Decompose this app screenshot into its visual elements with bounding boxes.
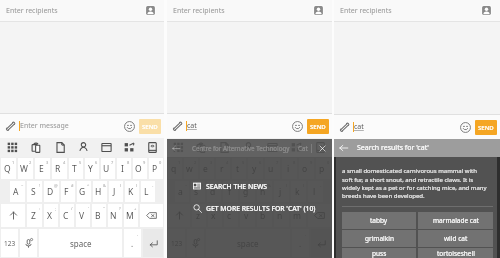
button[interactable]: F [61, 181, 75, 202]
button[interactable]: G [77, 181, 91, 202]
button[interactable]: Enter [143, 229, 163, 257]
button[interactable]: Emoji [289, 118, 305, 134]
button[interactable]: Shift [1, 204, 25, 227]
button[interactable]: D [44, 181, 59, 202]
button[interactable]: translate [118, 138, 141, 157]
button[interactable]: M [124, 204, 138, 227]
button[interactable]: P [149, 158, 163, 179]
button[interactable]: . [124, 229, 141, 257]
button[interactable]: H [93, 181, 107, 202]
button[interactable]: Contacts [481, 5, 492, 16]
button[interactable]: book [308, 138, 332, 157]
button[interactable]: person [236, 138, 260, 157]
button[interactable]: book [141, 138, 164, 157]
button[interactable]: W [18, 158, 33, 179]
button[interactable]: clip [24, 138, 48, 157]
button[interactable]: Close [318, 144, 327, 153]
button[interactable]: A [10, 181, 25, 202]
button[interactable]: SEARCH THE NEWS [193, 178, 332, 194]
button[interactable]: window [260, 138, 284, 157]
button[interactable]: Attach [4, 120, 16, 132]
button[interactable]: f [223, 181, 238, 202]
button[interactable]: translate [284, 138, 308, 157]
button[interactable]: b [257, 204, 272, 227]
button[interactable]: N [108, 204, 122, 227]
button[interactable]: clip [190, 138, 213, 157]
button[interactable]: grid [0, 138, 24, 157]
button[interactable]: m [291, 204, 306, 227]
button[interactable]: Back [172, 144, 181, 153]
button[interactable]: I [117, 158, 131, 179]
button[interactable]: d [207, 181, 221, 202]
button[interactable]: Attach [171, 120, 183, 132]
button[interactable]: Enter recipients [167, 0, 332, 21]
button[interactable]: doc [213, 138, 236, 157]
button[interactable]: v [240, 204, 255, 227]
button[interactable]: tabby [342, 212, 416, 229]
button[interactable]: z [192, 204, 206, 227]
button[interactable]: S [27, 181, 42, 202]
button[interactable]: C [60, 204, 74, 227]
button[interactable]: x [208, 204, 222, 227]
button[interactable]: Emoji [121, 118, 137, 134]
button[interactable]: GET MORE RESULTS FOR 'CAT' (10) [193, 200, 332, 216]
button[interactable]: SEND [475, 120, 497, 135]
button[interactable]: Emoji [457, 119, 473, 135]
button[interactable]: J [109, 181, 123, 202]
button[interactable]: T [69, 158, 83, 179]
button[interactable]: Enter recipients [0, 0, 164, 21]
button[interactable]: Z [27, 204, 42, 227]
button[interactable]: Backspace [140, 204, 163, 227]
button[interactable]: grid [167, 138, 190, 157]
button[interactable]: X [44, 204, 58, 227]
button[interactable]: grimalkin [342, 230, 416, 247]
button[interactable]: n [274, 204, 289, 227]
button[interactable]: doc [48, 138, 72, 157]
button[interactable]: Attach [338, 121, 350, 133]
button[interactable]: g [240, 181, 255, 202]
button[interactable]: Backspace [308, 204, 331, 227]
button[interactable]: s [191, 181, 205, 202]
button[interactable]: c [224, 204, 238, 227]
button[interactable]: puss [342, 248, 416, 258]
button[interactable]: O [133, 158, 147, 179]
button[interactable]: R [52, 158, 67, 179]
button[interactable]: 123 [1, 229, 18, 257]
button[interactable]: U [101, 158, 115, 179]
button[interactable]: person [72, 138, 95, 157]
button[interactable]: Voice input [20, 229, 37, 257]
button[interactable]: V [76, 204, 90, 227]
button[interactable]: w [184, 158, 198, 179]
button[interactable]: tortoiseshell [418, 248, 493, 258]
button[interactable]: K [125, 181, 139, 202]
button[interactable]: wild cat [418, 230, 493, 247]
button[interactable]: window [95, 138, 118, 157]
button[interactable]: Y [85, 158, 99, 179]
button[interactable]: Contacts [145, 5, 156, 16]
button[interactable]: Back [334, 139, 500, 157]
button[interactable]: Contacts [313, 5, 324, 16]
button[interactable]: space [39, 229, 122, 257]
button[interactable]: SEND [139, 119, 161, 134]
button[interactable]: E [35, 158, 50, 179]
button[interactable]: SEND [307, 119, 329, 134]
